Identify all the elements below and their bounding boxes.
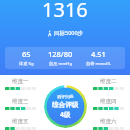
button[interactable]: 维度六 <box>93 118 124 130</box>
button[interactable]: 维度一 <box>5 78 36 90</box>
staticText: 维度三 <box>12 98 29 105</box>
staticText: 65 <box>22 49 31 59</box>
button[interactable]: 65 <box>5 47 125 69</box>
staticText: 128/80 <box>48 49 73 59</box>
staticText: 维度六 <box>100 118 117 125</box>
staticText: 4级 <box>60 110 71 119</box>
staticText: 血糖 mmol/L <box>86 61 111 67</box>
button[interactable]: 维度五 <box>5 118 36 130</box>
button[interactable]: 维度二 <box>93 78 124 90</box>
button[interactable]: 维度四 <box>93 98 124 110</box>
staticText: 1316 <box>42 0 88 23</box>
staticText: 测评问卷 <box>57 94 74 99</box>
staticText: 综合评级 <box>52 101 79 109</box>
button[interactable]: 测评问卷 <box>44 85 87 128</box>
staticText: 4.51 <box>91 49 106 59</box>
staticText: 目标5000步 <box>54 29 84 37</box>
other: Steps <box>46 30 53 37</box>
staticText: 维度四 <box>100 98 117 105</box>
staticText: 体重 Kg <box>19 61 34 67</box>
button[interactable]: 维度三 <box>5 98 36 110</box>
staticText: 维度二 <box>100 78 117 85</box>
staticText: 血压 mmHg <box>49 61 72 67</box>
staticText: 维度五 <box>12 118 29 125</box>
staticText: 维度一 <box>12 78 29 85</box>
